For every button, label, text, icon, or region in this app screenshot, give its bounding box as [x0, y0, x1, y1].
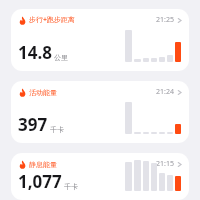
staticText: 21:25	[156, 15, 174, 25]
button[interactable]: Activity	[11, 153, 189, 200]
staticText: 千卡	[64, 182, 78, 191]
button[interactable]: Activity	[11, 81, 189, 143]
staticText: 千卡	[50, 125, 64, 134]
staticText: 静息能量	[29, 160, 57, 169]
button[interactable]: Activity	[11, 9, 189, 71]
staticText: 步行+跑步距离	[29, 15, 76, 25]
staticText: 14.8	[18, 41, 52, 64]
staticText: 1,077	[18, 170, 62, 193]
other: Activity	[18, 160, 27, 169]
staticText: 活动能量	[29, 88, 57, 97]
staticText: 397	[18, 113, 48, 136]
staticText: 公里	[54, 53, 68, 62]
staticText: 21:24	[156, 87, 174, 97]
staticText: 21:15	[156, 159, 174, 169]
other: Activity	[18, 16, 27, 25]
other: Activity	[18, 88, 27, 97]
